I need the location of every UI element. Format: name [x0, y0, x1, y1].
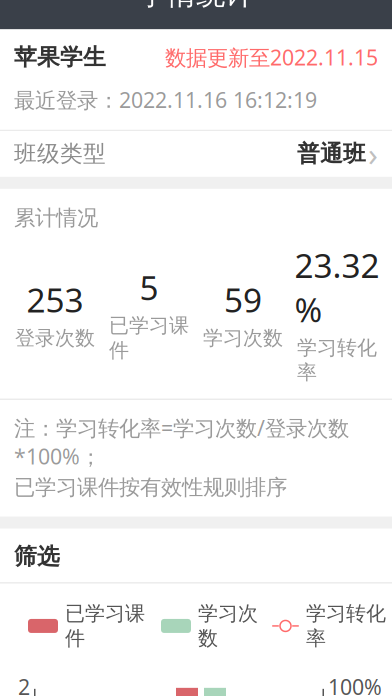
staticText: 学情统计	[138, 0, 254, 12]
staticText: 100%	[328, 672, 382, 696]
staticText: 筛选	[14, 542, 60, 570]
staticText: 学习转化率	[297, 335, 377, 385]
staticText: 注：学习转化率=学习次数/登录次数*100%；	[14, 414, 349, 470]
staticText: 数据更新至2022.11.15	[165, 43, 378, 71]
button[interactable]: 班级类型	[0, 131, 392, 177]
staticText: 59	[224, 277, 262, 322]
staticText: 登录次数	[15, 326, 95, 350]
staticText: 已学习课件	[65, 601, 145, 650]
staticText: 253	[26, 277, 83, 322]
staticText: 最近登录：2022.11.16 16:12:19	[14, 85, 317, 114]
staticText: 学习次数	[203, 326, 283, 350]
staticText: 普通班	[297, 140, 366, 168]
staticText: 5	[139, 265, 158, 309]
staticText: 苹果学生	[14, 43, 106, 71]
staticText: 已学习课件按有效性规则排序	[14, 474, 287, 500]
staticText: 累计情况	[14, 205, 98, 231]
staticText: ›	[368, 133, 378, 175]
staticText: 已学习课件	[109, 313, 189, 362]
staticText: 班级类型	[14, 140, 106, 168]
staticText: 学习转化率	[306, 601, 386, 650]
staticText: 2	[18, 672, 30, 696]
staticText: 学习次数	[198, 601, 258, 650]
staticText: 23.32%	[294, 243, 379, 331]
